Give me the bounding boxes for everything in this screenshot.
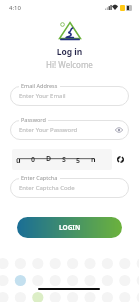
staticText: 0 [31, 155, 36, 165]
staticText: n [91, 155, 96, 165]
staticText: Email Address [21, 82, 58, 89]
button[interactable]: Enter Your Password [10, 120, 129, 140]
staticText: Log in [0, 46, 139, 58]
staticText: Password [21, 116, 46, 123]
staticText: S [62, 155, 66, 165]
button[interactable]: Show password [115, 126, 123, 134]
staticText: LOGIN [59, 223, 81, 232]
staticText: 4:10 [9, 4, 21, 12]
staticText: u [16, 156, 21, 166]
button[interactable]: Enter Captcha Code [10, 178, 129, 198]
staticText: 5 [76, 156, 81, 166]
button[interactable]: Enter Your Email [10, 86, 129, 106]
staticText: D [46, 154, 52, 164]
button[interactable]: Refresh captcha [114, 153, 126, 165]
staticText: Enter Captcha Code [19, 184, 75, 192]
staticText: Enter Captcha [21, 174, 58, 181]
button[interactable]: LOGIN [17, 217, 122, 238]
staticText: Enter Your Password [19, 126, 78, 134]
staticText: Hi! Welcome [0, 59, 139, 70]
staticText: Enter Your Email [19, 92, 66, 100]
